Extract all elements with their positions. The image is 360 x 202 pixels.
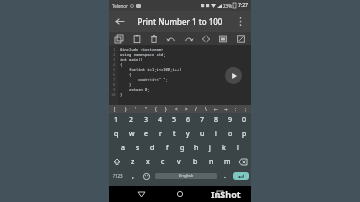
button[interactable]: { (151, 105, 161, 113)
button[interactable]: / (191, 105, 201, 113)
button[interactable]: l (231, 141, 245, 155)
button[interactable]: ) (120, 105, 131, 113)
staticText: y (186, 129, 190, 139)
button[interactable]: e (139, 127, 153, 141)
button[interactable]: Undo (164, 32, 178, 45)
button[interactable]: 6 (181, 113, 195, 127)
staticText: 8 (214, 115, 219, 125)
button[interactable]: Shift (109, 155, 125, 169)
button[interactable]: o (223, 127, 237, 141)
staticText: < (175, 106, 178, 112)
staticText: f (166, 143, 169, 153)
button[interactable]: b (187, 155, 203, 169)
button[interactable]: 0 (237, 113, 251, 127)
button[interactable]: 4 (153, 113, 167, 127)
button[interactable]: Backspace (235, 155, 251, 169)
button[interactable]: ← (211, 105, 221, 113)
button[interactable]: Back (133, 186, 149, 202)
staticText: : (235, 106, 237, 112)
button[interactable]: h (189, 141, 203, 155)
button[interactable]: } (161, 105, 171, 113)
button[interactable]: " (141, 105, 151, 113)
staticText: t (173, 129, 176, 139)
staticText: } (120, 82, 132, 87)
button[interactable]: z (125, 155, 140, 169)
button[interactable]: a (115, 141, 130, 155)
button[interactable]: 8 (209, 113, 223, 127)
button[interactable]: Comma (127, 169, 139, 183)
staticText: ) (125, 106, 127, 112)
button[interactable]: d (145, 141, 160, 155)
button[interactable]: v (171, 155, 187, 169)
button[interactable]: \ (201, 105, 211, 113)
staticText: int main() (120, 57, 143, 62)
button[interactable]: Edit (234, 32, 248, 45)
button[interactable]: ; (241, 105, 251, 113)
button[interactable]: q (109, 127, 124, 141)
staticText: v (177, 157, 181, 167)
button[interactable]: t (167, 127, 181, 141)
button[interactable]: < (171, 105, 181, 113)
button[interactable]: → (221, 105, 231, 113)
button[interactable]: ?123 (109, 169, 127, 183)
button[interactable]: g (175, 141, 189, 155)
button[interactable]: Period (219, 169, 231, 183)
button[interactable]: x (140, 155, 155, 169)
staticText: w (129, 129, 135, 139)
button[interactable]: Emoji (139, 169, 153, 183)
staticText: ( (114, 106, 116, 112)
button[interactable]: u (195, 127, 209, 141)
button[interactable]: Back (109, 11, 130, 32)
button[interactable]: Recent apps (212, 186, 228, 202)
button[interactable]: r (153, 127, 167, 141)
button[interactable]: 2 (124, 113, 139, 127)
button[interactable]: Copy (112, 32, 126, 45)
staticText: { (155, 106, 157, 112)
button[interactable]: c (155, 155, 171, 169)
button[interactable]: Enter (233, 172, 249, 180)
button[interactable]: Delete (147, 32, 161, 45)
button[interactable]: Redo (182, 32, 196, 45)
button[interactable]: 7 (195, 113, 209, 127)
button[interactable]: m (219, 155, 235, 169)
button[interactable]: : (231, 105, 241, 113)
button[interactable]: > (181, 105, 191, 113)
button[interactable]: w (124, 127, 139, 141)
staticText: 7:27 (238, 2, 248, 9)
button[interactable]: 3 (139, 113, 153, 127)
button[interactable]: k (217, 141, 231, 155)
staticText: > (185, 106, 188, 112)
staticText: 23% (223, 3, 232, 9)
staticText: 0 (242, 115, 247, 125)
button[interactable]: i (209, 127, 223, 141)
button[interactable]: s (130, 141, 145, 155)
button[interactable]: English (155, 173, 217, 179)
button[interactable]: ( (109, 105, 120, 113)
staticText: 5 (172, 115, 177, 125)
staticText: 8 (113, 82, 116, 87)
button[interactable]: Keyboard (216, 32, 230, 45)
staticText: #include <iostream> (120, 47, 164, 52)
staticText: Telenor (112, 3, 128, 9)
button[interactable]: 9 (223, 113, 237, 127)
button[interactable]: j (203, 141, 217, 155)
button[interactable]: f (160, 141, 175, 155)
staticText: 4 (158, 115, 163, 125)
staticText: k (222, 143, 226, 153)
button[interactable]: Insert tag (199, 32, 213, 45)
button[interactable]: n (203, 155, 219, 169)
staticText: / (195, 106, 197, 112)
staticText: e (144, 129, 148, 139)
button[interactable]: ' (131, 105, 141, 113)
button[interactable]: p (237, 127, 251, 141)
staticText: s (136, 143, 140, 153)
button[interactable]: More options (230, 11, 251, 32)
button[interactable]: y (181, 127, 195, 141)
staticText: q (114, 129, 119, 139)
button[interactable]: Paste (130, 32, 144, 45)
staticText: u (200, 129, 205, 139)
button[interactable]: 5 (167, 113, 181, 127)
button[interactable]: Home (172, 186, 188, 202)
button[interactable]: Run (225, 67, 242, 84)
button[interactable]: 1 (109, 113, 124, 127)
